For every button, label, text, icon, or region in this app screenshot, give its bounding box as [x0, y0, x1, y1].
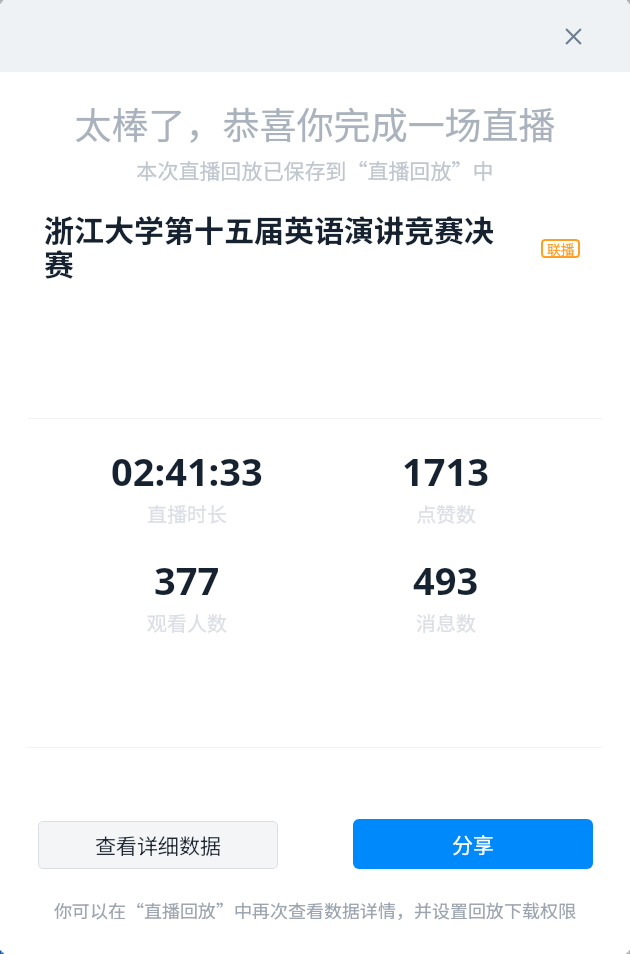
button[interactable]: Close [553, 16, 594, 57]
staticText: 02:41:33 [111, 445, 263, 497]
staticText: 493 [413, 554, 479, 606]
staticText: 1713 [402, 445, 489, 497]
staticText: 本次直播回放已保存到“直播回放”中 [0, 155, 630, 185]
staticText: 太棒了，恭喜你完成一场直播 [0, 96, 630, 150]
staticText: 浙江大学第十五届英语演讲竞赛决赛 [44, 207, 500, 285]
staticText: 观看人数 [147, 608, 227, 637]
staticText: 联播 [547, 239, 575, 258]
staticText: 点赞数 [416, 499, 476, 528]
staticText: 查看详细数据 [95, 830, 221, 860]
staticText: 消息数 [416, 608, 476, 637]
staticText: 377 [154, 554, 220, 606]
staticText: 分享 [452, 829, 494, 859]
button[interactable]: 分享 [353, 819, 593, 869]
button[interactable]: 查看详细数据 [38, 821, 278, 869]
staticText: 直播时长 [147, 499, 227, 528]
staticText: 你可以在“直播回放”中再次查看数据详情，并设置回放下载权限 [0, 897, 630, 923]
